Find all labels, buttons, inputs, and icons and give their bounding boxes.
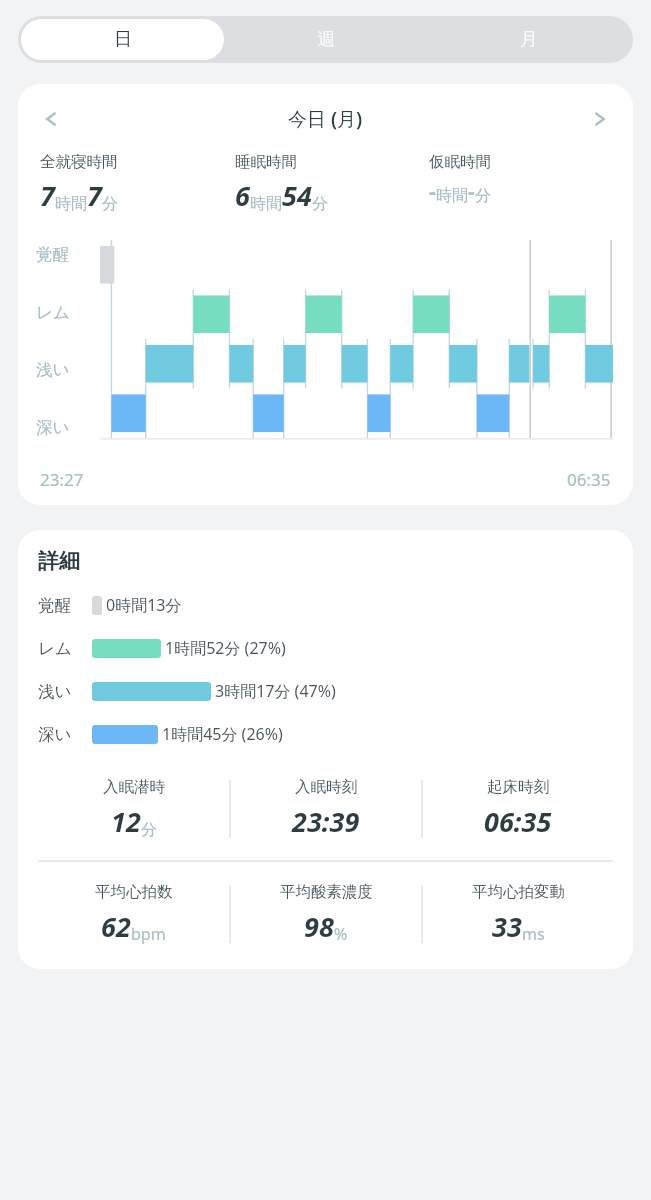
staticText: 06:35 xyxy=(484,803,552,840)
button[interactable]: 週 xyxy=(224,19,427,60)
staticText: 1時間52分 (27%) xyxy=(165,637,286,659)
staticText: 平均心拍数 xyxy=(95,882,173,902)
button[interactable]: Previous day xyxy=(30,98,72,140)
staticText: 週 xyxy=(317,28,335,51)
staticText: - xyxy=(468,177,475,206)
button[interactable]: 月 xyxy=(427,19,630,60)
staticText: 浅い xyxy=(38,681,72,702)
staticText: 62 xyxy=(101,908,131,945)
staticText: 分 xyxy=(475,186,491,206)
staticText: bpm xyxy=(131,923,166,945)
staticText: 分 xyxy=(141,820,157,840)
button[interactable]: 日 xyxy=(21,19,224,60)
staticText: 入眠時刻 xyxy=(295,777,357,797)
button[interactable]: レム xyxy=(38,637,613,659)
staticText: 時間 xyxy=(250,194,282,214)
staticText: 覚醒 xyxy=(38,595,71,616)
staticText: 分 xyxy=(102,194,118,214)
button[interactable]: 覚醒 xyxy=(38,594,613,616)
staticText: 6 xyxy=(235,177,250,214)
staticText: 平均酸素濃度 xyxy=(280,882,373,902)
staticText: 全就寝時間 xyxy=(40,152,118,172)
staticText: 日 xyxy=(114,28,132,51)
staticText: 平均心拍変動 xyxy=(472,882,565,902)
staticText: % xyxy=(334,923,348,945)
button[interactable]: 入眠時刻 xyxy=(231,777,421,840)
button[interactable]: 平均酸素濃度 xyxy=(231,882,421,945)
staticText: 時間 xyxy=(55,194,87,214)
staticText: 今日 (月) xyxy=(288,106,363,132)
staticText: 23:27 xyxy=(40,468,84,491)
staticText: 7 xyxy=(87,177,102,214)
staticText: 23:39 xyxy=(292,803,360,840)
staticText: 33 xyxy=(492,908,522,945)
button[interactable]: 入眠潜時 xyxy=(38,777,229,840)
staticText: 時間 xyxy=(436,186,468,206)
button[interactable]: Next day xyxy=(579,98,621,140)
staticText: 分 xyxy=(312,194,328,214)
staticText: 睡眠時間 xyxy=(235,152,297,172)
staticText: ms xyxy=(522,923,545,945)
staticText: 98 xyxy=(304,908,334,945)
button[interactable]: 平均心拍変動 xyxy=(423,882,613,945)
staticText: 深い xyxy=(38,724,72,745)
staticText: レム xyxy=(36,302,70,323)
staticText: 詳細 xyxy=(38,548,80,574)
staticText: 1時間45分 (26%) xyxy=(162,723,283,745)
button[interactable]: 浅い xyxy=(38,680,613,702)
staticText: 54 xyxy=(282,177,312,214)
staticText: 深い xyxy=(36,417,70,438)
button[interactable]: 深い xyxy=(38,723,613,745)
staticText: レム xyxy=(38,638,72,659)
staticText: 覚醒 xyxy=(36,244,69,265)
staticText: 0時間13分 xyxy=(106,594,182,616)
staticText: 月 xyxy=(520,28,538,51)
staticText: 7 xyxy=(40,177,55,214)
button[interactable]: 起床時刻 xyxy=(423,777,613,840)
staticText: 起床時刻 xyxy=(487,777,549,797)
staticText: - xyxy=(429,177,436,206)
staticText: 12 xyxy=(111,803,141,840)
staticText: 3時間17分 (47%) xyxy=(215,680,336,702)
staticText: 仮眠時間 xyxy=(429,152,491,172)
button[interactable]: 平均心拍数 xyxy=(38,882,229,945)
staticText: 浅い xyxy=(36,359,70,380)
staticText: 06:35 xyxy=(567,468,611,491)
staticText: 入眠潜時 xyxy=(103,777,165,797)
